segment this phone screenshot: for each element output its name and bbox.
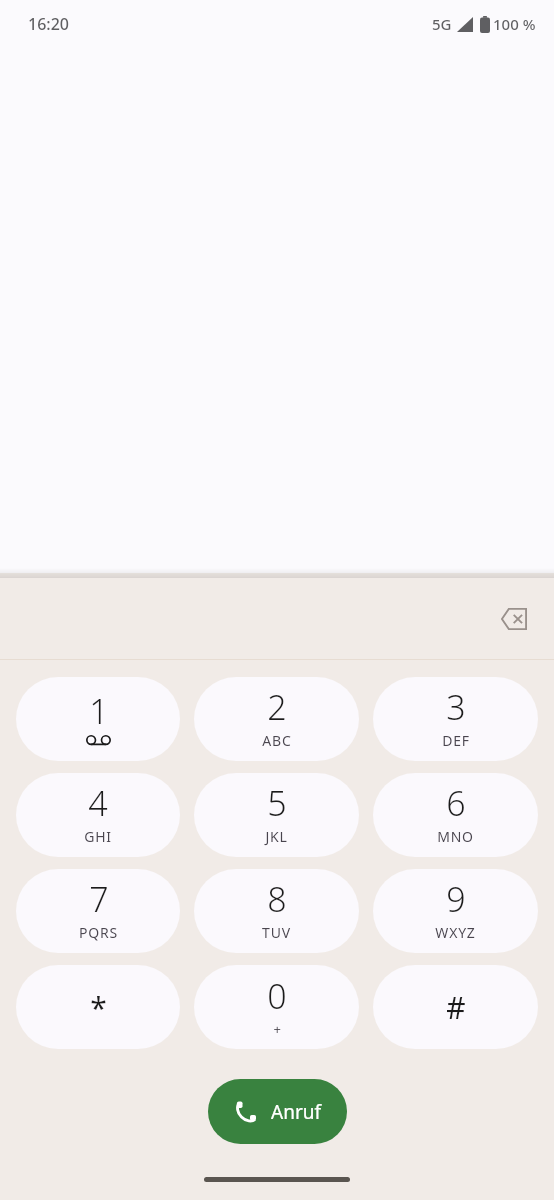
button[interactable]: 6 xyxy=(373,773,538,857)
staticText: # xyxy=(446,987,466,1028)
staticText: 6 xyxy=(446,780,466,826)
staticText: Anruf xyxy=(271,1099,322,1125)
staticText: GHI xyxy=(84,827,112,846)
staticText: 9 xyxy=(446,876,466,922)
button[interactable]: 5 xyxy=(194,773,359,857)
button[interactable]: * xyxy=(16,965,180,1049)
staticText: 3 xyxy=(446,684,466,730)
button[interactable]: 9 xyxy=(373,869,538,953)
button[interactable]: 2 xyxy=(194,677,359,761)
staticText: 4 xyxy=(88,780,108,826)
button[interactable]: 7 xyxy=(16,869,180,953)
staticText: 5 xyxy=(267,780,287,826)
staticText: DEF xyxy=(442,731,470,750)
button[interactable]: 0 xyxy=(194,965,359,1049)
staticText: 16:20 xyxy=(28,13,69,35)
staticText: ABC xyxy=(262,731,292,750)
button[interactable]: 3 xyxy=(373,677,538,761)
staticText: 7 xyxy=(89,876,109,922)
staticText: + xyxy=(273,1020,282,1038)
button[interactable]: Backspace xyxy=(486,591,542,647)
staticText: 2 xyxy=(267,684,287,730)
staticText: TUV xyxy=(262,923,291,942)
button[interactable]: 4 xyxy=(16,773,180,857)
staticText: * xyxy=(90,987,107,1028)
button[interactable]: Anruf xyxy=(208,1079,347,1144)
staticText: 1 xyxy=(89,688,109,734)
staticText: 8 xyxy=(267,876,287,922)
button[interactable]: 8 xyxy=(194,869,359,953)
staticText: 5G xyxy=(432,14,452,34)
staticText: 100 % xyxy=(493,14,536,34)
staticText: WXYZ xyxy=(435,923,476,942)
staticText: PQRS xyxy=(79,923,118,942)
staticText: 0 xyxy=(267,973,287,1019)
staticText: MNO xyxy=(437,827,474,846)
staticText: JKL xyxy=(265,827,288,846)
button[interactable]: # xyxy=(373,965,538,1049)
button[interactable]: 1 xyxy=(16,677,180,761)
